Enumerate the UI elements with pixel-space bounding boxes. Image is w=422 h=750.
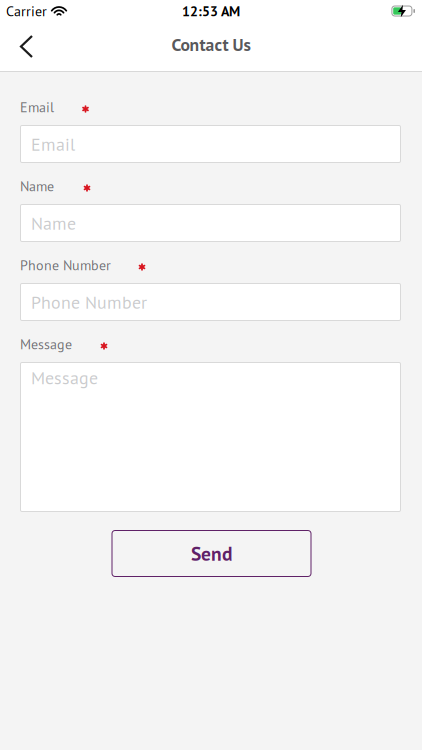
staticText: Phone Number — [31, 290, 147, 313]
staticText: Phone Number — [20, 256, 111, 274]
staticText: Contact Us — [171, 33, 250, 56]
button[interactable]: Phone Number text field — [20, 283, 401, 321]
staticText: Send — [191, 541, 232, 566]
staticText: Name — [20, 177, 54, 195]
staticText: Email — [20, 98, 54, 116]
button[interactable]: Message text field — [20, 362, 401, 512]
button[interactable]: Send — [110, 529, 310, 576]
staticText: Message — [31, 366, 98, 389]
staticText: Email — [31, 132, 75, 155]
staticText: 12:53 AM — [182, 2, 240, 20]
staticText: Carrier — [6, 2, 47, 20]
button[interactable]: Name text field — [20, 204, 401, 242]
staticText: Name — [31, 211, 76, 234]
staticText: Message — [20, 335, 72, 353]
button[interactable]: Back — [0, 22, 47, 71]
button[interactable]: Email text field — [20, 125, 401, 163]
